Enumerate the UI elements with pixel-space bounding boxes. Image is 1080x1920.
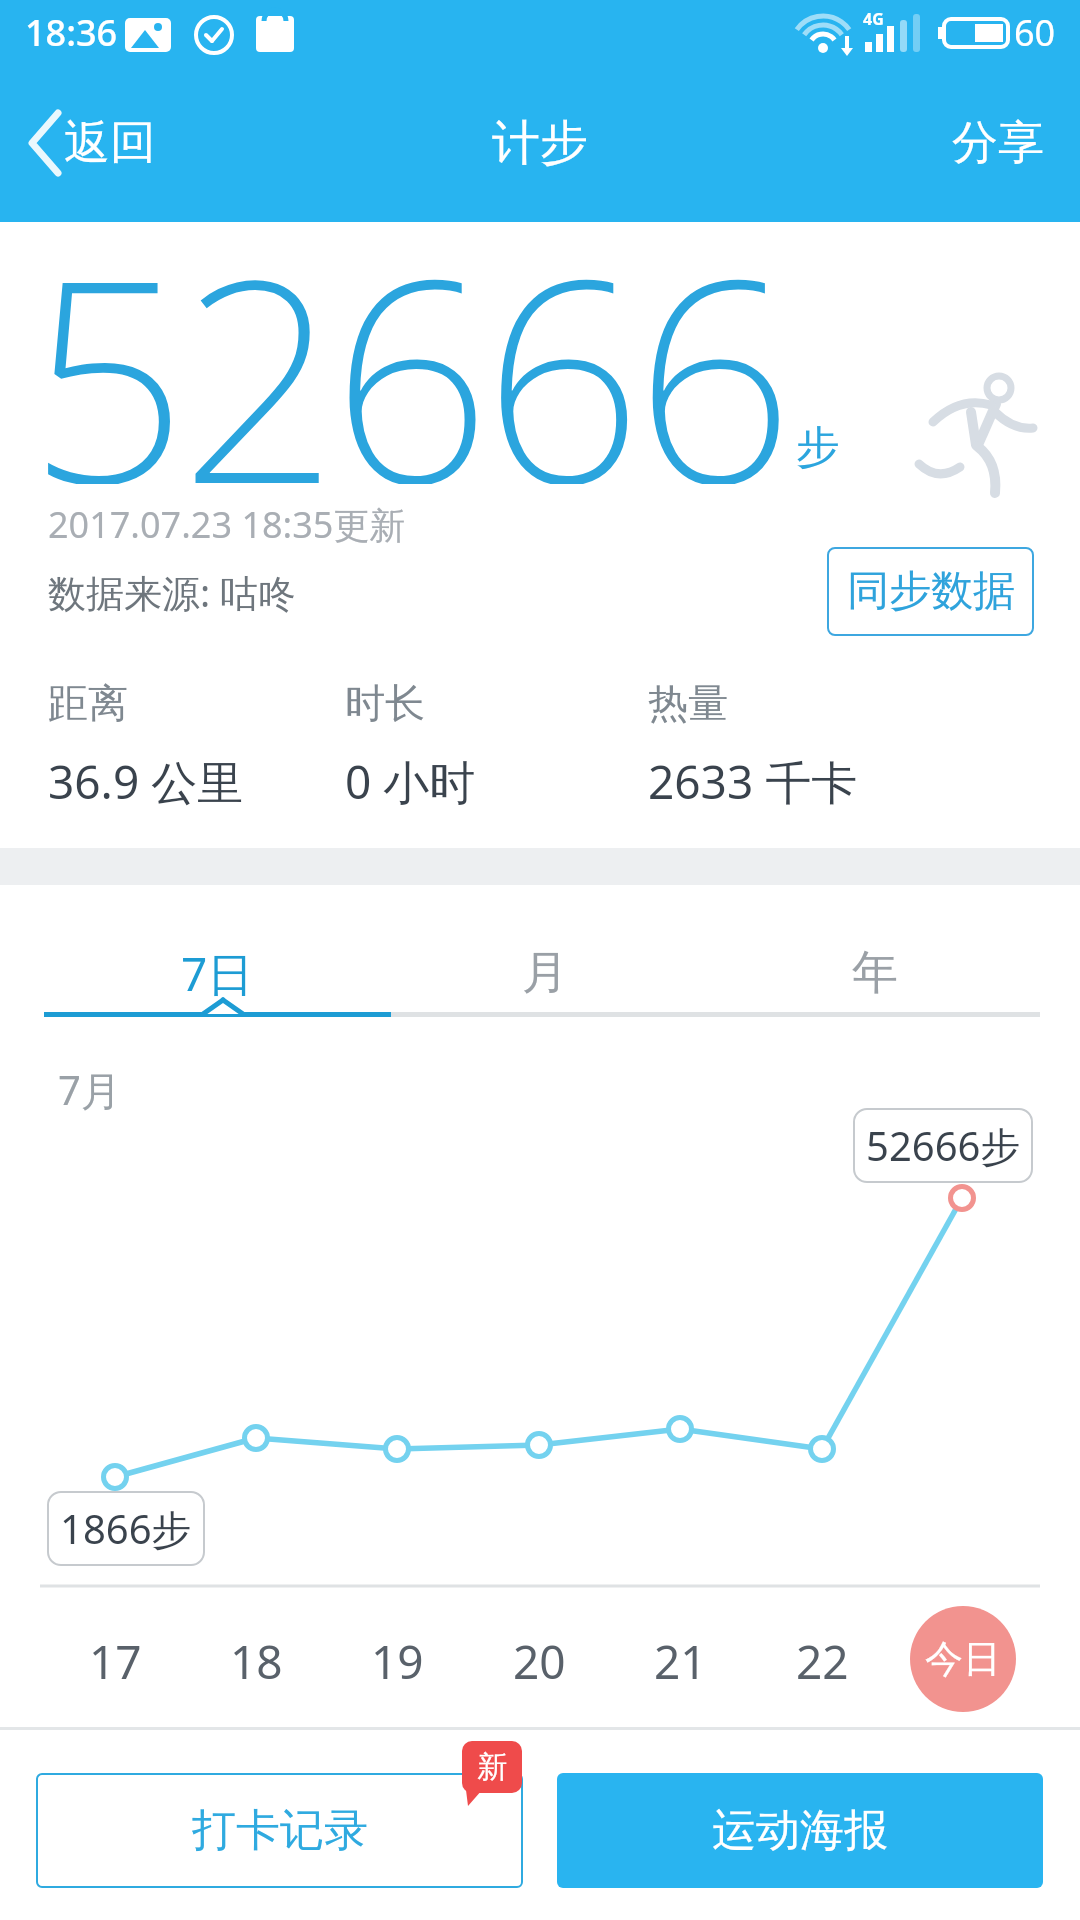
staticText: 4G [863, 8, 884, 28]
staticText: 2017.07.23 18:35更新 [48, 500, 406, 549]
staticText: 返回 [64, 114, 156, 172]
button[interactable]: 年 [720, 940, 1030, 1006]
staticText: 打卡记录 [192, 1803, 368, 1858]
staticText: 18:36 [25, 8, 118, 54]
staticText: 分享 [952, 114, 1044, 172]
staticText: 17 [89, 1630, 142, 1686]
staticText: 52666步 [866, 1118, 1021, 1173]
staticText: 距离 [48, 678, 128, 728]
staticText: 月 [522, 944, 568, 1002]
staticText: 年 [852, 944, 898, 1002]
staticText: 7月 [58, 1062, 121, 1117]
staticText: 36.9 公里 [48, 750, 244, 813]
button[interactable]: 打卡记录 [36, 1773, 523, 1888]
staticText: 7日 [181, 942, 254, 1005]
staticText: 数据来源: 咕咚 [48, 566, 297, 618]
button[interactable]: 同步数据 [827, 547, 1034, 636]
button[interactable]: 返回 [28, 108, 156, 178]
staticText: 60 [1014, 8, 1056, 54]
staticText: 0 小时 [345, 750, 476, 813]
staticText: 时长 [345, 678, 425, 728]
staticText: 1866步 [60, 1501, 192, 1556]
staticText: 22 [796, 1630, 849, 1686]
staticText: 新 [477, 1748, 507, 1786]
staticText: 步 [796, 420, 840, 475]
staticText: 热量 [648, 678, 728, 728]
staticText: 今日 [925, 1635, 1001, 1683]
button[interactable]: 7日 [44, 940, 391, 1006]
staticText: 19 [371, 1630, 424, 1686]
staticText: 2633 千卡 [648, 750, 858, 813]
staticText: 计步 [492, 113, 588, 173]
staticText: 18 [230, 1630, 283, 1686]
staticText: 52666 [28, 184, 786, 484]
button[interactable]: 月 [390, 940, 700, 1006]
button[interactable]: 运动海报 [557, 1773, 1043, 1888]
button[interactable]: 今日 [910, 1606, 1016, 1712]
staticText: 21 [654, 1630, 707, 1686]
staticText: 20 [513, 1630, 566, 1686]
staticText: 运动海报 [712, 1803, 888, 1858]
button[interactable]: 分享 [940, 108, 1055, 178]
staticText: 同步数据 [847, 565, 1015, 618]
